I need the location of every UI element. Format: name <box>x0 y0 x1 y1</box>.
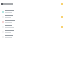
button[interactable]: Profile <box>0 2 64 5</box>
button[interactable]: Star <box>0 34 64 39</box>
button[interactable]: Star <box>0 19 64 24</box>
button[interactable]: Star <box>0 9 64 14</box>
button[interactable]: Star <box>0 29 64 34</box>
button[interactable]: Star <box>0 14 64 19</box>
button[interactable]: Star <box>0 24 64 29</box>
